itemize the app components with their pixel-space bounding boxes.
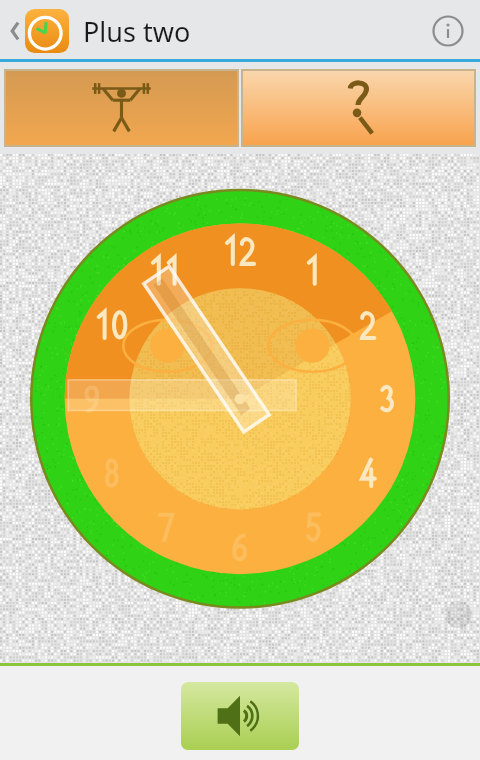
button[interactable]: Back xyxy=(4,9,73,53)
button[interactable]: Play sound xyxy=(181,682,299,750)
button[interactable]: Exercise xyxy=(5,70,238,146)
button[interactable]: Help xyxy=(242,70,475,146)
staticText: Plus two xyxy=(83,13,191,50)
button[interactable]: Info xyxy=(428,11,468,51)
other: Back xyxy=(8,18,22,44)
